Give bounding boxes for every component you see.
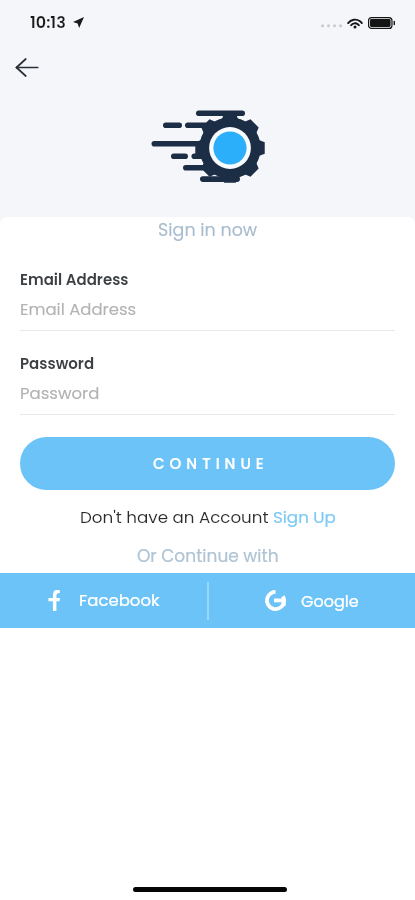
- button[interactable]: Back: [9, 50, 43, 84]
- staticText: Or Continue with: [137, 544, 279, 568]
- staticText: Google: [301, 590, 359, 612]
- staticText: Don't have an Account Sign Up: [80, 505, 336, 528]
- button[interactable]: Password: [20, 353, 395, 415]
- staticText: Sign in now: [158, 218, 258, 242]
- staticText: Password: [20, 382, 100, 405]
- button[interactable]: Email Address: [20, 269, 395, 331]
- button[interactable]: CONTINUE: [20, 437, 395, 490]
- staticText: Facebook: [79, 589, 160, 612]
- staticText: CONTINUE: [153, 453, 269, 474]
- staticText: 10:13: [30, 11, 66, 33]
- button[interactable]: Don't have an Account Sign Up: [0, 504, 415, 528]
- staticText: Email Address: [20, 269, 129, 290]
- staticText: Password: [20, 353, 95, 374]
- button[interactable]: Facebook: [0, 573, 207, 628]
- button[interactable]: Google: [209, 573, 415, 628]
- staticText: Email Address: [20, 298, 137, 321]
